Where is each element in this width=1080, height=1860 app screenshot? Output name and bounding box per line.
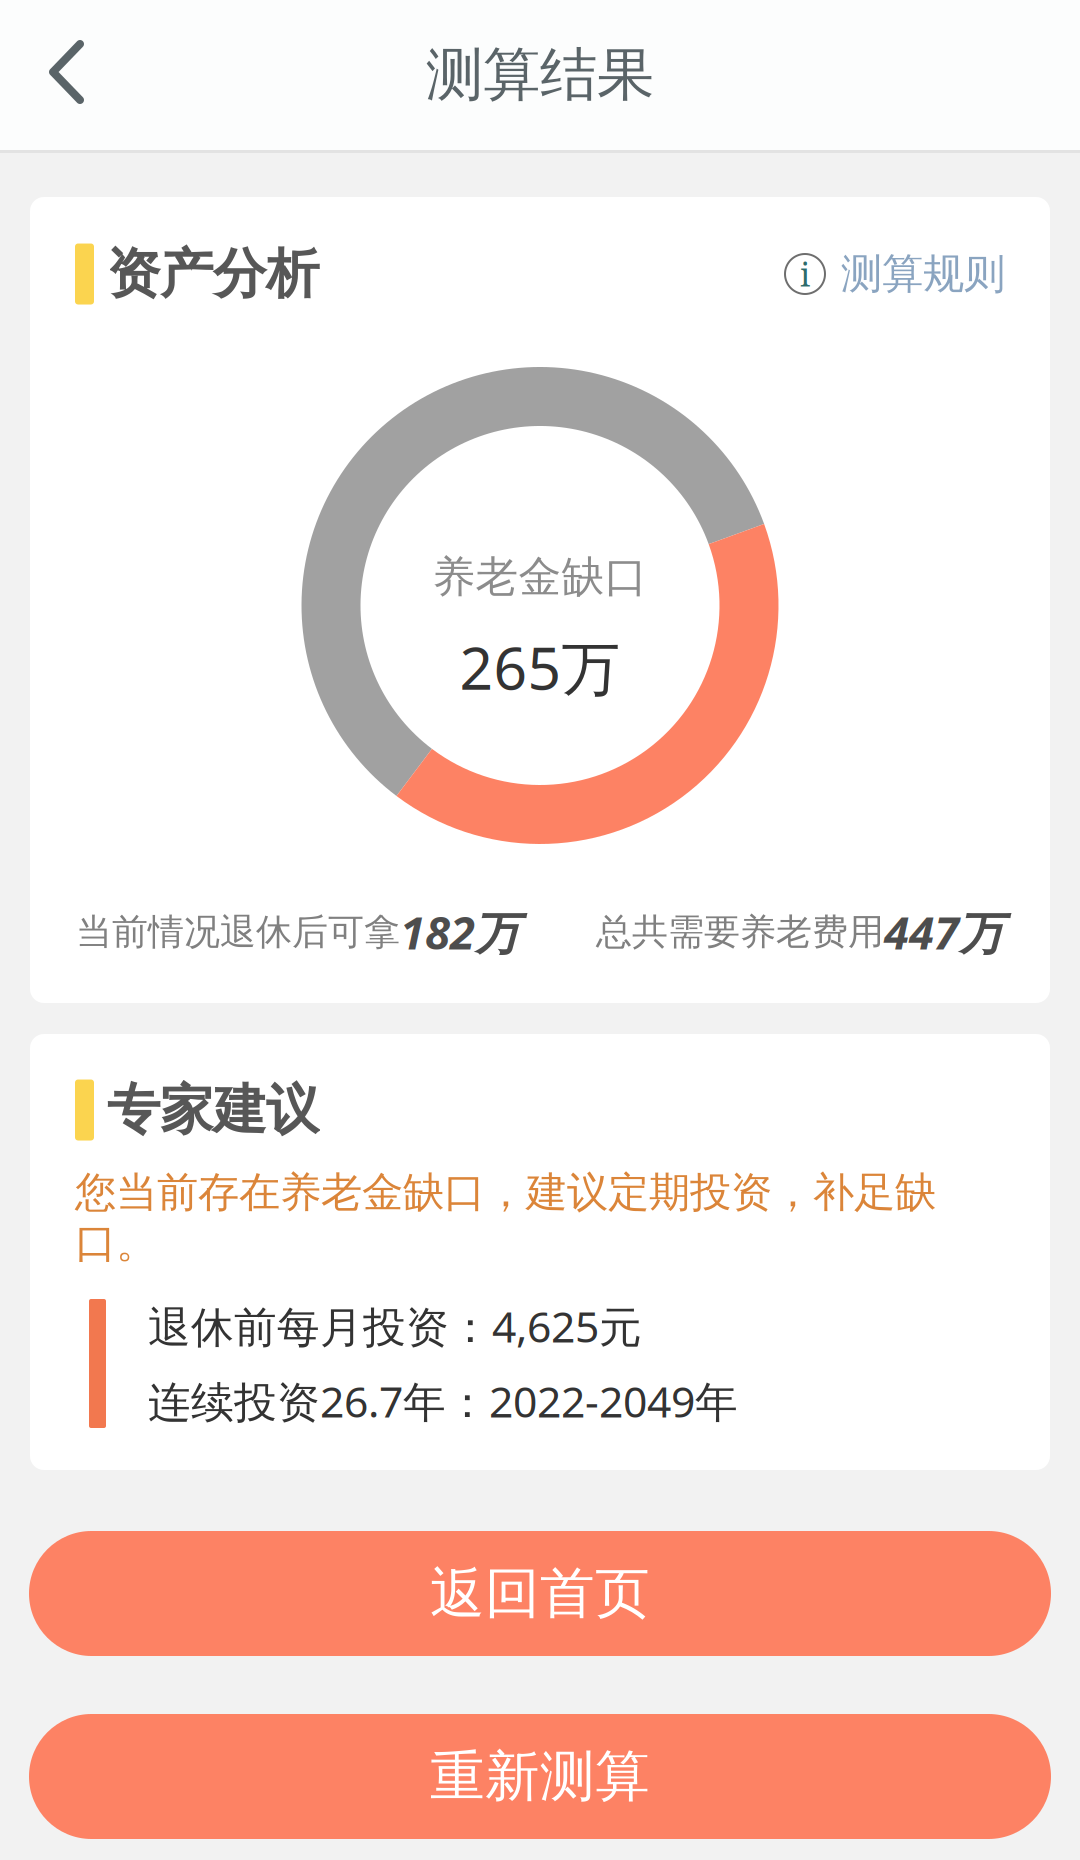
staticText: 447万	[884, 902, 1004, 962]
staticText: 总共需要养老费用	[596, 910, 884, 954]
staticText: 专家建议	[107, 1077, 319, 1143]
staticText: 265万	[459, 628, 620, 706]
staticText: 测算结果	[426, 40, 654, 110]
button[interactable]: i	[785, 249, 1005, 299]
staticText: 退休前每月投资：4,625元	[148, 1298, 642, 1354]
staticText: 测算规则	[841, 249, 1005, 299]
staticText: 连续投资26.7年：2022-2049年	[148, 1373, 738, 1429]
staticText: 口。	[75, 1218, 157, 1269]
staticText: 返回首页	[430, 1560, 650, 1627]
staticText: 当前情况退休后可拿	[76, 910, 400, 954]
staticText: 您当前存在养老金缺口，建议定期投资，补足缺	[75, 1167, 936, 1218]
button[interactable]: 重新测算	[29, 1714, 1051, 1839]
button[interactable]: Back	[0, 0, 108, 150]
staticText: 养老金缺口	[432, 551, 647, 603]
staticText: 182万	[400, 902, 520, 962]
staticText: i	[800, 252, 810, 296]
staticText: 资产分析	[107, 241, 319, 307]
button[interactable]: 返回首页	[29, 1531, 1051, 1656]
staticText: 重新测算	[430, 1743, 650, 1810]
